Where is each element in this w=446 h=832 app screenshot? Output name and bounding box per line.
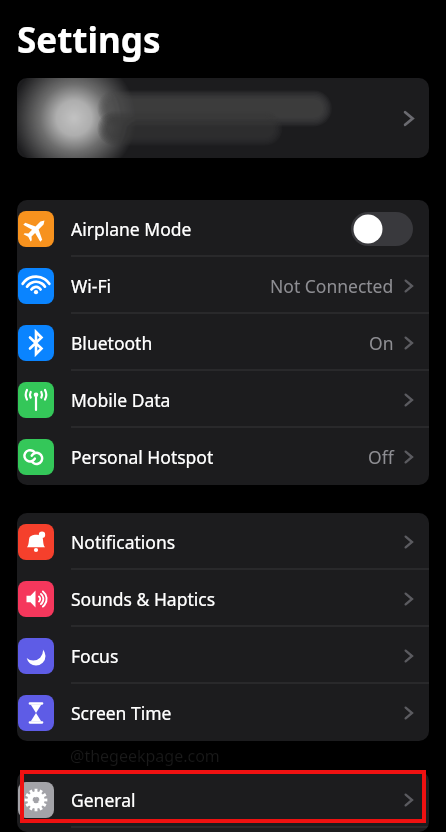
staticText: Personal Hotspot (71, 445, 214, 469)
button[interactable]: Mobile Data (17, 371, 429, 428)
button[interactable]: Apple ID, iCloud, Media & Purchases (17, 78, 429, 158)
staticText: Airplane Mode (71, 217, 192, 241)
staticText: Wi-Fi (71, 274, 112, 298)
staticText: On (369, 331, 394, 355)
button[interactable]: Notifications (17, 513, 429, 570)
staticText: Screen Time (71, 701, 172, 725)
button[interactable]: Personal Hotspot (17, 428, 429, 485)
button[interactable]: Screen Time (17, 684, 429, 741)
staticText: @thegeekpage.com (70, 745, 220, 767)
staticText: Off (368, 445, 394, 469)
staticText: Bluetooth (71, 331, 153, 355)
staticText: Focus (71, 644, 119, 668)
button[interactable]: General (17, 771, 429, 828)
staticText: Not Connected (270, 274, 394, 298)
button[interactable]: Bluetooth (17, 314, 429, 371)
staticText: Settings (17, 16, 161, 64)
button[interactable]: Focus (17, 627, 429, 684)
button[interactable]: Wi-Fi (17, 257, 429, 314)
staticText: General (71, 788, 136, 812)
button[interactable]: Airplane Mode (17, 200, 429, 257)
button[interactable]: Sounds & Haptics (17, 570, 429, 627)
staticText: Mobile Data (71, 388, 171, 412)
staticText: Sounds & Haptics (71, 587, 216, 611)
staticText: Notifications (71, 530, 176, 554)
